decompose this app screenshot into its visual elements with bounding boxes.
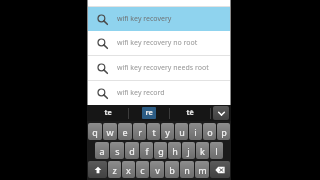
staticText: v	[155, 164, 160, 176]
button[interactable]: x	[122, 161, 135, 178]
button[interactable]: wifi key recovery no root	[87, 31, 231, 55]
staticText: wifi key recovery needs root	[117, 63, 209, 73]
button[interactable]: l	[210, 142, 223, 159]
staticText: te	[104, 108, 112, 118]
staticText: b	[169, 164, 175, 176]
button[interactable]: a	[95, 142, 109, 159]
button[interactable]: b	[165, 161, 179, 178]
staticText: o	[207, 126, 213, 138]
staticText: m	[198, 164, 207, 176]
staticText: h	[172, 145, 178, 157]
button[interactable]: Hide suggestions	[213, 106, 229, 120]
button[interactable]: s	[110, 142, 124, 159]
staticText: x	[126, 164, 131, 176]
staticText: q	[92, 126, 98, 138]
button[interactable]: g	[154, 142, 167, 159]
staticText: c	[140, 164, 145, 176]
staticText: i	[194, 126, 197, 138]
button[interactable]: v	[150, 161, 164, 178]
button[interactable]: d	[125, 142, 139, 159]
staticText: k	[200, 145, 205, 157]
staticText: y	[165, 126, 170, 138]
staticText: s	[115, 145, 120, 157]
staticText: p	[221, 126, 227, 138]
button[interactable]: o	[203, 123, 216, 140]
staticText: n	[184, 164, 190, 176]
button[interactable]: j	[182, 142, 195, 159]
button[interactable]: y	[161, 123, 174, 140]
button[interactable]: te	[87, 105, 128, 121]
button[interactable]: k	[196, 142, 209, 159]
button[interactable]: w	[103, 123, 117, 140]
staticText: j	[187, 145, 190, 157]
button[interactable]: i	[189, 123, 202, 140]
staticText: l	[215, 145, 218, 157]
staticText: wifi key recovery	[117, 14, 172, 24]
staticText: tè	[186, 108, 194, 118]
button[interactable]: Shift	[88, 161, 107, 178]
staticText: wifi key record	[117, 88, 165, 98]
button[interactable]: wifi key record	[87, 81, 231, 105]
button[interactable]: q	[88, 123, 102, 140]
button[interactable]: re	[129, 105, 169, 121]
button[interactable]: m	[195, 161, 209, 178]
staticText: a	[99, 145, 105, 157]
button[interactable]: z	[108, 161, 121, 178]
button[interactable]: wifi key recovery	[87, 7, 231, 31]
staticText: wifi key recovery no root	[117, 38, 198, 48]
button[interactable]: n	[180, 161, 194, 178]
staticText: f	[145, 145, 149, 157]
staticText: e	[122, 126, 128, 138]
staticText: g	[158, 145, 164, 157]
staticText: r	[138, 126, 142, 138]
button[interactable]: tè	[170, 105, 210, 121]
button[interactable]: f	[140, 142, 153, 159]
button[interactable]: Backspace	[210, 161, 230, 178]
button[interactable]: h	[168, 142, 181, 159]
button[interactable]: u	[175, 123, 188, 140]
staticText: u	[179, 126, 185, 138]
staticText: d	[129, 145, 135, 157]
button[interactable]: e	[118, 123, 132, 140]
staticText: re	[145, 108, 153, 118]
staticText: t	[152, 126, 156, 138]
staticText: z	[112, 164, 117, 176]
button[interactable]: r	[133, 123, 146, 140]
staticText: w	[106, 126, 114, 138]
button[interactable]: t	[147, 123, 160, 140]
button[interactable]: c	[136, 161, 149, 178]
button[interactable]: p	[217, 123, 230, 140]
button[interactable]: wifi key recovery needs root	[87, 56, 231, 80]
